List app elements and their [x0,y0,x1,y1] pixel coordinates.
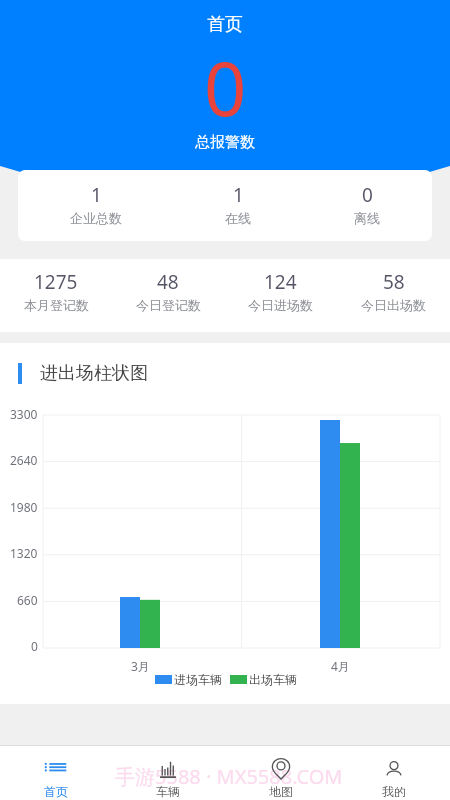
staticText: 1 [233,182,244,208]
button[interactable]: 地图 [224,750,337,800]
staticText: 手游5588 · MX5588.COM [115,763,343,790]
button[interactable]: 58 [337,254,450,327]
staticText: 0 [31,638,38,654]
staticText: 3300 [10,406,38,422]
staticText: 本月登记数 [24,297,89,313]
button[interactable]: 我的 [337,750,450,800]
staticText: 进出场柱状图 [40,362,148,385]
staticText: 今日进场数 [248,297,313,313]
staticText: 今日登记数 [136,297,201,313]
staticText: 总报警数 [195,133,255,152]
staticText: 660 [17,592,38,608]
staticText: 58 [383,269,405,295]
staticText: 0 [204,37,247,138]
button[interactable]: 0 [354,170,380,239]
staticText: 首页 [207,13,243,36]
staticText: 出场车辆 [249,672,297,687]
button[interactable]: 124 [224,254,337,327]
staticText: 1320 [10,545,38,561]
staticText: 4月 [331,658,350,674]
staticText: 首页 [44,784,68,799]
staticText: 1 [91,182,102,208]
staticText: 车辆 [156,784,180,799]
staticText: 在线 [225,210,251,226]
staticText: 进场车辆 [174,672,222,687]
staticText: 2640 [10,452,38,468]
staticText: 48 [157,269,179,295]
staticText: 企业总数 [70,210,122,226]
staticText: 地图 [269,784,293,799]
staticText: 今日出场数 [361,297,426,313]
button[interactable]: 48 [112,254,224,327]
staticText: 离线 [354,210,380,226]
button[interactable]: 1 [70,170,122,239]
button[interactable]: 1275 [0,254,112,327]
button[interactable]: 车辆 [112,750,224,800]
staticText: 0 [362,182,373,208]
button[interactable]: 1 [225,170,251,239]
staticText: 1980 [10,499,38,515]
staticText: 我的 [382,784,406,799]
staticText: 1275 [34,269,78,295]
button[interactable]: 首页 [0,750,112,800]
staticText: 124 [264,269,297,295]
staticText: 3月 [131,658,150,674]
